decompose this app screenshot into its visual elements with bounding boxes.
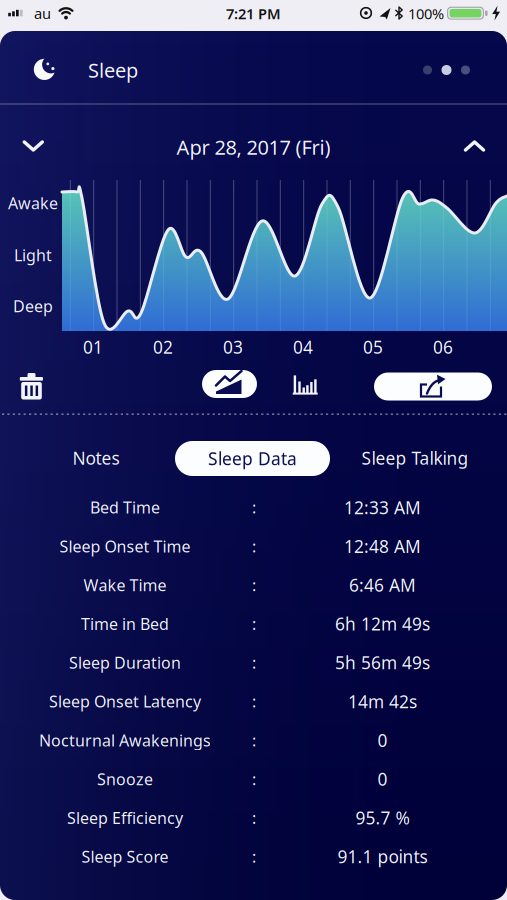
staticText: : xyxy=(252,574,256,596)
staticText: Sleep Duration xyxy=(69,652,181,673)
staticText: Deep xyxy=(13,295,53,317)
staticText: 95.7 % xyxy=(355,806,409,829)
button[interactable]: Previous day xyxy=(16,134,50,158)
staticText: 05 xyxy=(363,335,383,358)
staticText: 6:46 AM xyxy=(349,573,416,596)
staticText: 14m 42s xyxy=(348,690,417,713)
button[interactable]: Line chart xyxy=(202,370,257,398)
staticText: Apr 28, 2017 (Fri) xyxy=(176,134,330,160)
button[interactable]: Share xyxy=(374,372,492,400)
staticText: 7:21 PM xyxy=(226,4,281,23)
staticText: : xyxy=(252,652,256,673)
staticText: Sleep Efficiency xyxy=(67,807,183,828)
button[interactable]: Bar chart xyxy=(290,372,320,396)
button[interactable]: Next day xyxy=(457,134,491,158)
staticText: 01 xyxy=(83,335,103,358)
staticText: Snooze xyxy=(97,768,153,790)
staticText: Sleep Data xyxy=(208,447,297,470)
staticText: 5h 56m 49s xyxy=(335,651,430,674)
staticText: 03 xyxy=(223,335,243,358)
staticText: Sleep xyxy=(88,57,138,83)
staticText: 12:33 AM xyxy=(344,496,421,519)
staticText: : xyxy=(252,691,256,712)
staticText: : xyxy=(252,768,256,790)
button[interactable]: Notes xyxy=(36,440,156,475)
staticText: au xyxy=(34,4,51,23)
staticText: 6h 12m 49s xyxy=(335,612,430,635)
staticText: Time in Bed xyxy=(81,613,169,634)
staticText: Sleep Talking xyxy=(361,446,468,469)
staticText: : xyxy=(252,536,256,557)
staticText: Sleep Score xyxy=(81,846,168,867)
staticText: Awake xyxy=(8,192,58,214)
staticText: Wake Time xyxy=(83,574,166,596)
staticText: 02 xyxy=(153,335,173,358)
staticText: Bed Time xyxy=(90,497,160,518)
button[interactable]: Delete xyxy=(14,368,48,402)
staticText: 06 xyxy=(433,335,453,358)
staticText: : xyxy=(252,613,256,634)
staticText: : xyxy=(252,807,256,828)
button[interactable]: Sleep Data xyxy=(175,441,330,476)
staticText: 0 xyxy=(377,729,387,752)
staticText: 0 xyxy=(377,767,387,790)
staticText: Light xyxy=(14,244,52,266)
staticText: Sleep Onset Time xyxy=(59,536,190,557)
button[interactable]: Sleep Talking xyxy=(345,440,485,475)
staticText: Notes xyxy=(72,446,119,469)
staticText: 12:48 AM xyxy=(344,535,421,558)
staticText: : xyxy=(252,497,256,518)
staticText: 91.1 points xyxy=(337,845,427,868)
staticText: : xyxy=(252,846,256,867)
staticText: Sleep Onset Latency xyxy=(49,691,201,712)
staticText: Nocturnal Awakenings xyxy=(39,730,211,751)
staticText: : xyxy=(252,730,256,751)
staticText: 100% xyxy=(408,4,444,23)
staticText: 04 xyxy=(293,335,313,358)
